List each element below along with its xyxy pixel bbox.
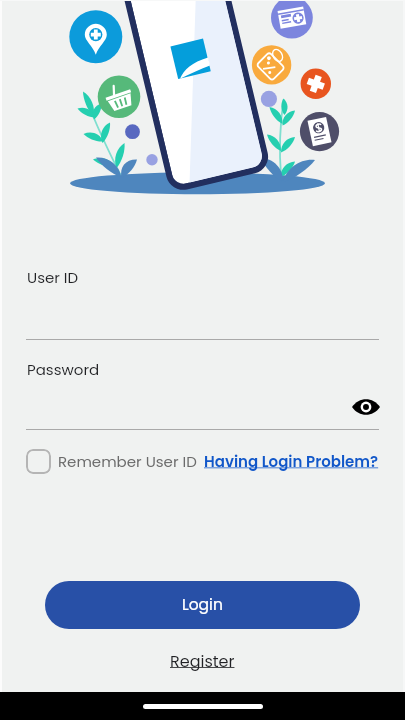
button[interactable]: Show password [352,398,380,416]
staticText: Having Login Problem? [204,451,379,472]
staticText: Register [170,650,235,672]
staticText: Password [27,359,100,380]
button[interactable]: Login [45,581,360,629]
staticText: User ID [27,267,79,288]
button[interactable]: User ID [0,258,405,340]
button[interactable]: Remember User ID [26,449,51,474]
staticText: Remember User ID [58,451,197,472]
button[interactable]: Password [0,350,405,430]
staticText: Login [182,594,223,616]
button[interactable]: Remember User ID [51,445,190,477]
button[interactable]: Register [170,650,235,672]
button[interactable]: Having Login Problem? [190,445,365,477]
